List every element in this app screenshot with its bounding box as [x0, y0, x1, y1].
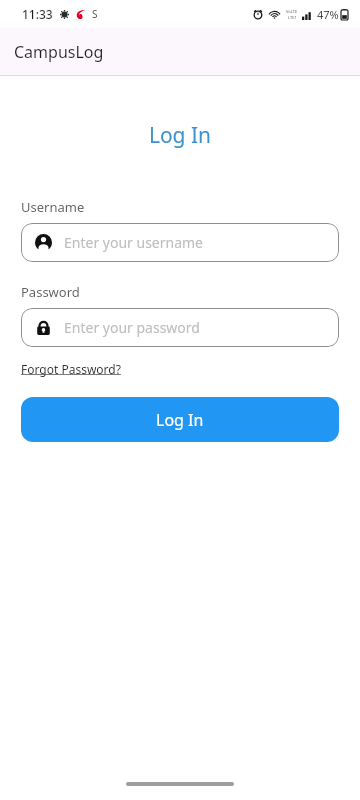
staticText: CampusLog: [14, 41, 104, 63]
staticText: Password: [21, 283, 80, 301]
staticText: LTE1: [288, 15, 297, 20]
staticText: VoLTE: [286, 9, 298, 14]
staticText: Username: [21, 198, 85, 216]
button[interactable]: Log In: [21, 397, 339, 442]
staticText: 47%: [317, 7, 339, 22]
staticText: Enter your password: [64, 318, 200, 337]
staticText: Enter your username: [64, 233, 204, 252]
staticText: S: [92, 7, 98, 21]
staticText: Log In: [0, 121, 360, 150]
button[interactable]: Enter your username: [21, 223, 339, 262]
button[interactable]: Enter your password: [21, 308, 339, 347]
staticText: 11:33: [22, 6, 53, 22]
staticText: Forgot Password?: [21, 361, 121, 377]
staticText: Log In: [156, 409, 204, 431]
button[interactable]: Forgot Password?: [21, 361, 121, 377]
